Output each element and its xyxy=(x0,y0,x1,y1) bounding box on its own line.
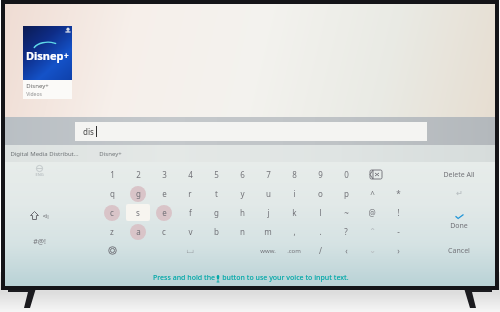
button[interactable]: Keyboard settings xyxy=(99,241,125,260)
staticText: ! xyxy=(397,207,400,218)
staticText: Disnep xyxy=(26,48,64,63)
staticText: j xyxy=(267,207,270,218)
button[interactable]: ^ xyxy=(359,184,385,203)
button[interactable]: Change language xyxy=(35,165,44,184)
button[interactable]: Disnep xyxy=(23,26,72,99)
button[interactable]: * xyxy=(385,184,411,203)
button[interactable]: g xyxy=(203,203,229,222)
button[interactable]: g xyxy=(125,184,151,203)
button[interactable]: ~ xyxy=(333,203,359,222)
staticText: f xyxy=(189,207,192,218)
button[interactable]: z xyxy=(99,222,125,241)
button[interactable]: / xyxy=(307,241,333,260)
button[interactable]: n xyxy=(229,222,255,241)
button[interactable]: j xyxy=(255,203,281,222)
button[interactable]: h xyxy=(229,203,255,222)
staticText: z xyxy=(110,226,114,237)
button[interactable]: 6 xyxy=(229,165,255,184)
button[interactable]: 0 xyxy=(333,165,359,184)
button[interactable]: v xyxy=(177,222,203,241)
staticText: / xyxy=(319,245,322,256)
button[interactable]: p xyxy=(333,184,359,203)
staticText: Cancel xyxy=(448,246,470,256)
button[interactable]: 1 xyxy=(99,165,125,184)
button[interactable]: q xyxy=(99,184,125,203)
staticText: 1 xyxy=(110,169,115,180)
button[interactable]: c xyxy=(151,222,177,241)
staticText: 6 xyxy=(240,169,245,180)
button[interactable]: e xyxy=(151,203,177,222)
button[interactable]: s xyxy=(125,203,151,222)
button[interactable]: i xyxy=(281,184,307,203)
button[interactable]: Space xyxy=(125,241,255,260)
button[interactable]: t xyxy=(203,184,229,203)
button[interactable]: 5 xyxy=(203,165,229,184)
staticText: u xyxy=(266,188,271,199)
button[interactable]: Shift xyxy=(30,206,49,225)
button[interactable]: #@! xyxy=(33,232,46,251)
button[interactable]: c xyxy=(99,203,125,222)
button[interactable]: 3 xyxy=(151,165,177,184)
staticText: Done xyxy=(450,221,468,231)
staticText: g xyxy=(136,188,141,199)
staticText: ⌴ xyxy=(186,246,194,255)
button[interactable]: f xyxy=(177,203,203,222)
staticText: v xyxy=(188,226,193,237)
button[interactable]: ⌄ xyxy=(359,241,385,260)
button[interactable]: e xyxy=(151,184,177,203)
staticText: ? xyxy=(344,226,348,237)
button[interactable]: o xyxy=(307,184,333,203)
button[interactable]: ‹ xyxy=(333,241,359,260)
button[interactable]: l xyxy=(307,203,333,222)
staticText: t xyxy=(215,188,218,199)
button[interactable]: 4 xyxy=(177,165,203,184)
button[interactable]: dis xyxy=(75,122,427,141)
button[interactable]: 8 xyxy=(281,165,307,184)
staticText: www. xyxy=(260,247,276,255)
button[interactable]: r xyxy=(177,184,203,203)
button[interactable]: @ xyxy=(359,203,385,222)
staticText: p xyxy=(344,188,349,199)
staticText: ⌃ xyxy=(369,227,376,236)
button[interactable]: ? xyxy=(333,222,359,241)
button[interactable]: . xyxy=(307,222,333,241)
staticText: n xyxy=(240,226,245,237)
button[interactable]: Backspace xyxy=(359,165,389,184)
button[interactable]: www. xyxy=(255,241,281,260)
button[interactable]: k xyxy=(281,203,307,222)
button[interactable]: u xyxy=(255,184,281,203)
staticText: o xyxy=(318,188,323,199)
button[interactable]: - xyxy=(385,222,411,241)
staticText: ^ xyxy=(370,188,375,199)
button[interactable]: Digital Media Distribut... xyxy=(10,150,99,158)
button[interactable]: Done xyxy=(423,203,495,241)
button[interactable]: 7 xyxy=(255,165,281,184)
button[interactable]: , xyxy=(281,222,307,241)
staticText: 2 xyxy=(136,169,141,180)
button[interactable]: y xyxy=(229,184,255,203)
button[interactable]: b xyxy=(203,222,229,241)
staticText: m xyxy=(264,226,272,237)
staticText: button to use your voice to input text. xyxy=(220,273,349,283)
button[interactable]: › xyxy=(385,241,411,260)
staticText: Disney+ xyxy=(26,82,49,90)
staticText: q xyxy=(110,188,115,199)
button[interactable]: a xyxy=(125,222,151,241)
staticText: #@! xyxy=(33,237,46,247)
button[interactable]: Cancel xyxy=(423,241,495,260)
staticText: 0 xyxy=(344,169,349,180)
button[interactable]: m xyxy=(255,222,281,241)
button[interactable]: 2 xyxy=(125,165,151,184)
staticText: 8 xyxy=(292,169,297,180)
staticText: Disney+ xyxy=(99,150,122,158)
button[interactable]: 9 xyxy=(307,165,333,184)
button[interactable]: ! xyxy=(385,203,411,222)
button[interactable]: Delete All xyxy=(423,165,495,184)
button[interactable]: Disney+ xyxy=(99,150,122,158)
staticText: e xyxy=(162,188,167,199)
button[interactable]: .com xyxy=(281,241,307,260)
staticText: c xyxy=(110,207,114,218)
staticText: @ xyxy=(368,207,376,218)
